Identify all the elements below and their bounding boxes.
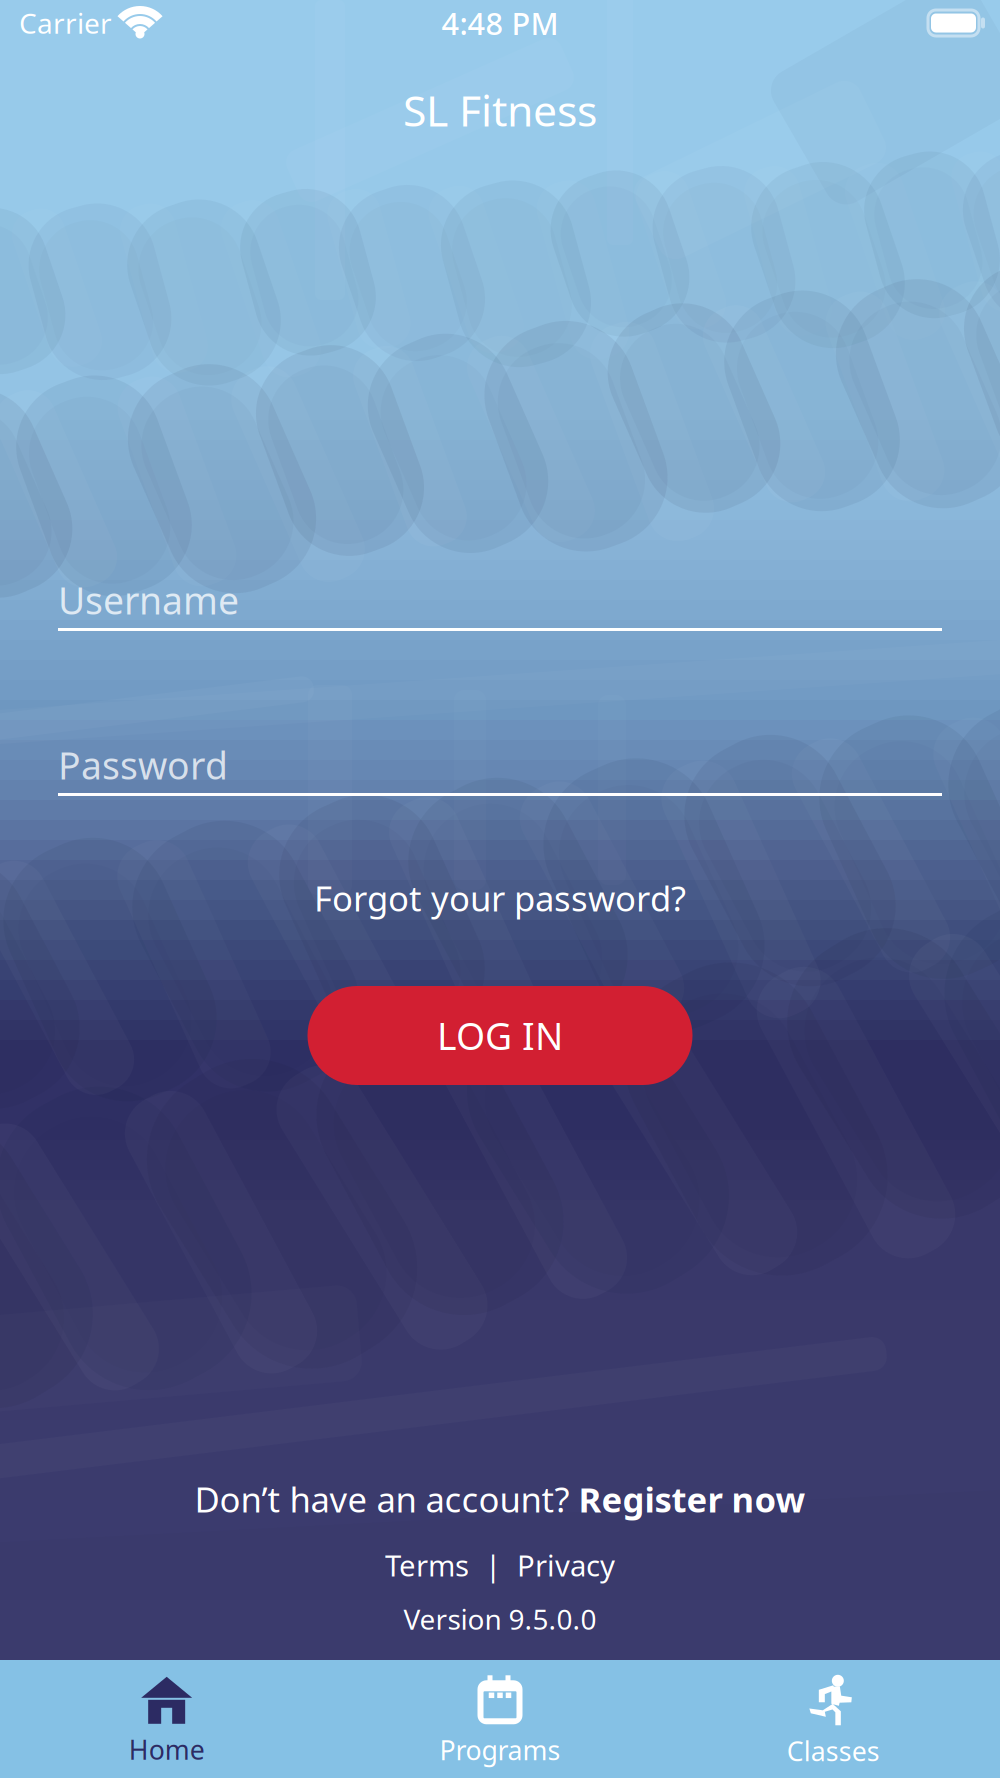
- staticText: Home: [129, 1732, 205, 1767]
- staticText: Terms: [385, 1545, 469, 1584]
- staticText: 4:48 PM: [441, 3, 558, 43]
- staticText: Carrier: [19, 4, 112, 42]
- staticText: LOG IN: [437, 1011, 563, 1060]
- staticText: Username: [58, 575, 239, 625]
- staticText: |: [485, 1545, 501, 1584]
- button[interactable]: Programs: [333, 1660, 667, 1778]
- button[interactable]: Password: [58, 737, 942, 796]
- button[interactable]: Username: [58, 572, 942, 631]
- staticText: Forgot your password?: [314, 875, 686, 921]
- staticText: Programs: [439, 1732, 560, 1768]
- staticText: SL Fitness: [403, 82, 597, 138]
- staticText: Password: [58, 740, 228, 790]
- button[interactable]: Forgot your password?: [314, 872, 686, 924]
- button[interactable]: Terms: [385, 1545, 469, 1584]
- button[interactable]: Classes: [667, 1660, 1000, 1778]
- staticText: Version 9.5.0.0: [403, 1600, 596, 1638]
- button[interactable]: LOG IN: [307, 986, 692, 1085]
- button[interactable]: Home: [0, 1660, 333, 1778]
- button[interactable]: Privacy: [517, 1545, 615, 1584]
- button[interactable]: Register now: [578, 1476, 805, 1522]
- staticText: Classes: [787, 1733, 880, 1769]
- staticText: Privacy: [517, 1545, 615, 1584]
- staticText: Don’t have an account?: [194, 1476, 578, 1522]
- staticText: Register now: [578, 1476, 805, 1522]
